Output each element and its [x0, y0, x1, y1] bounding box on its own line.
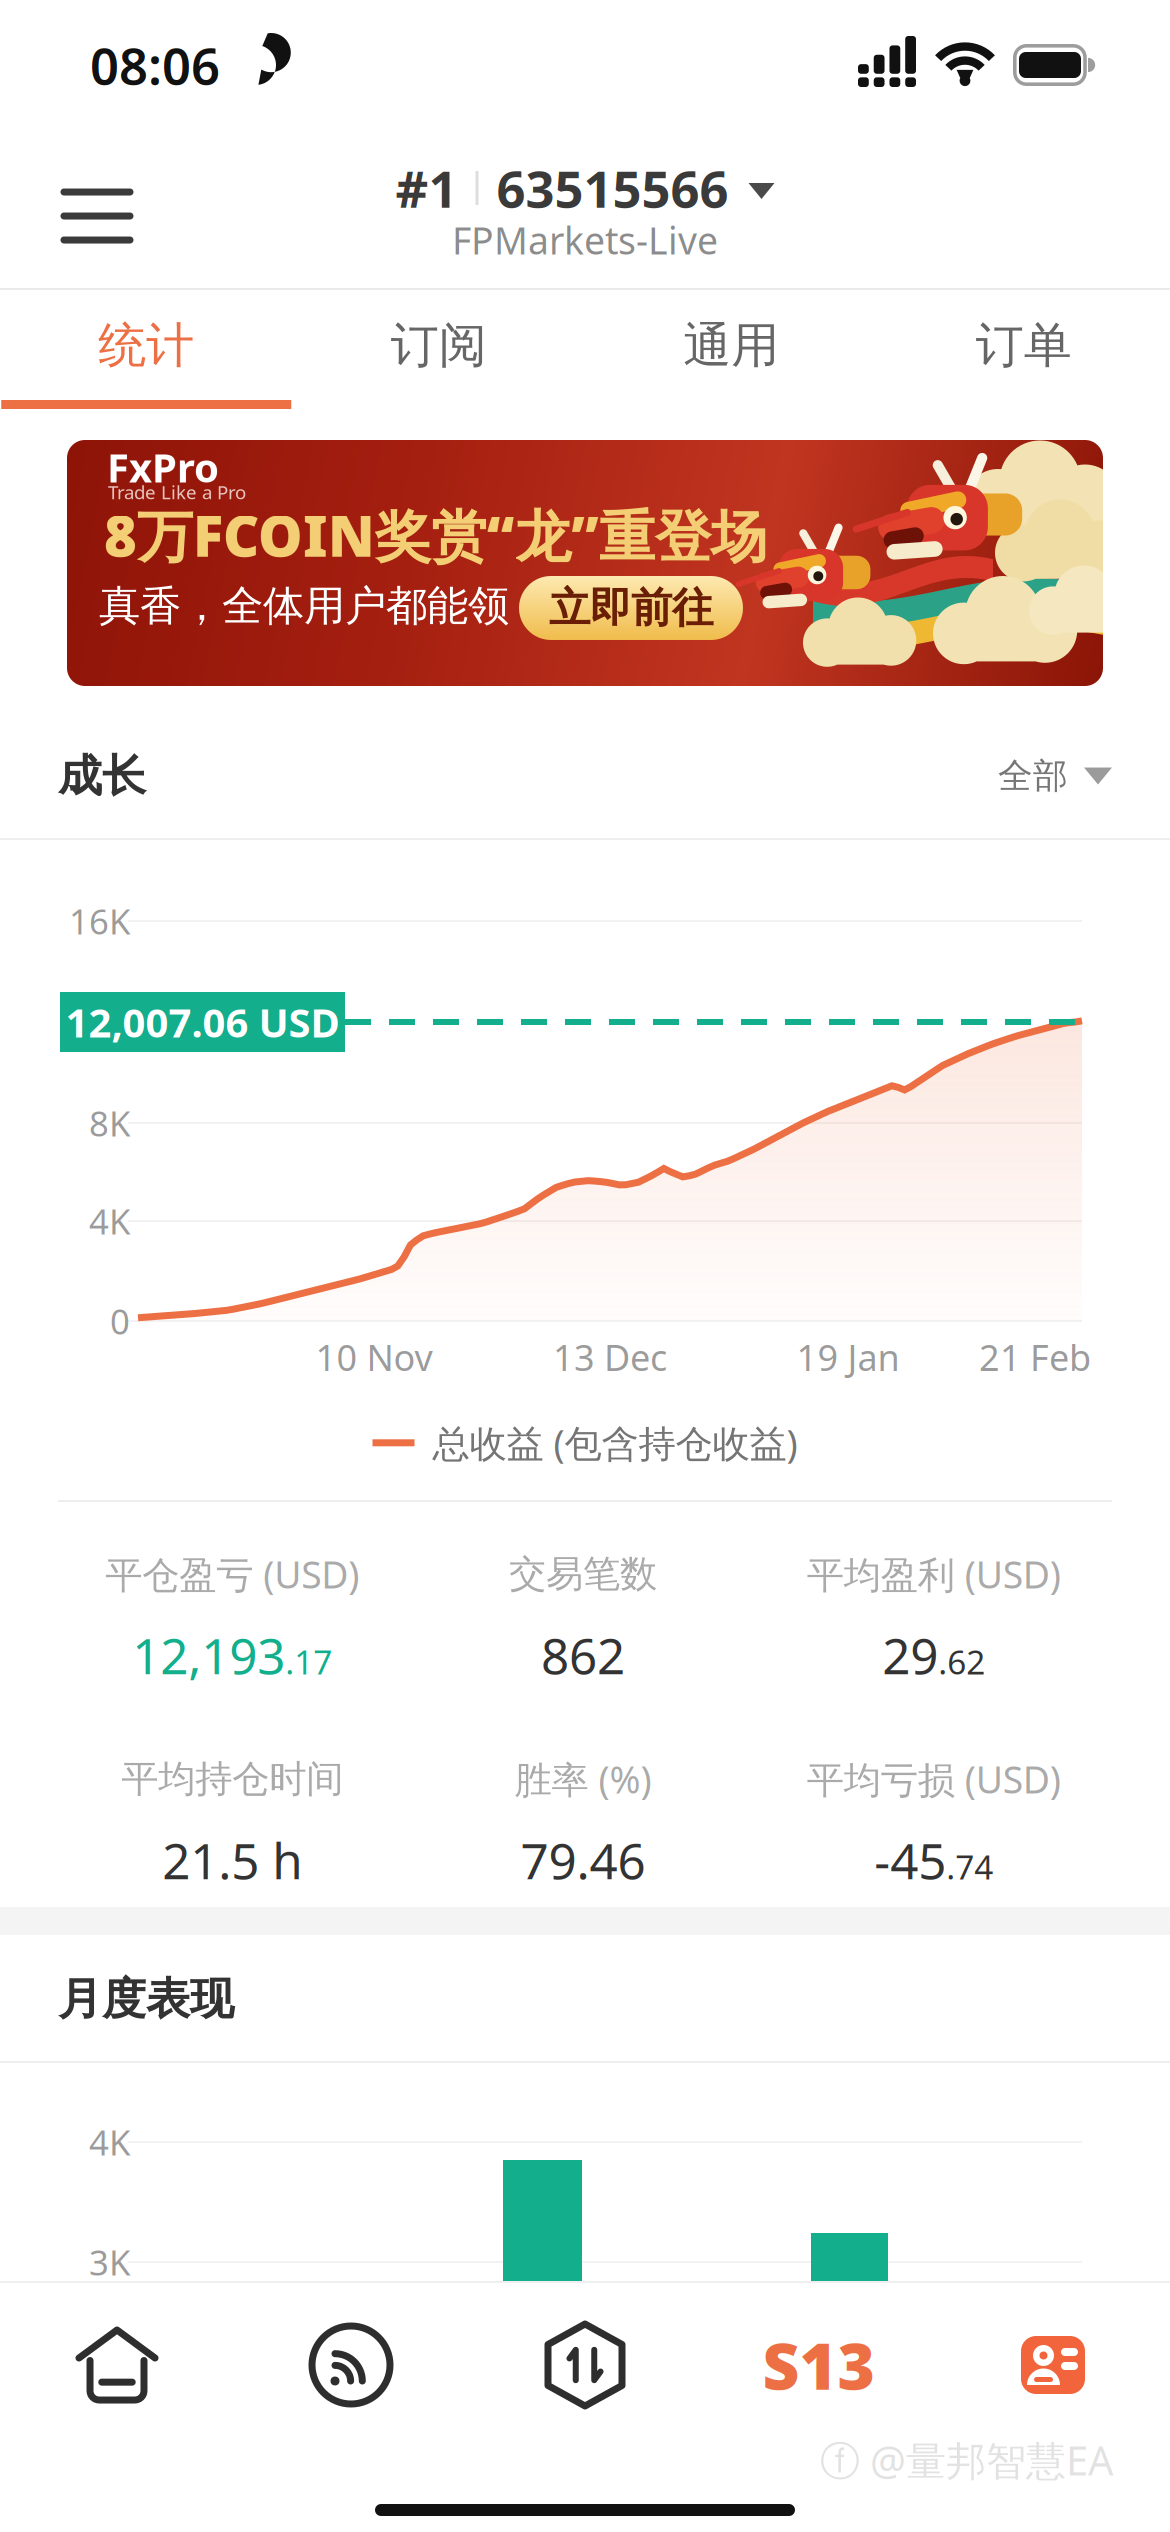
staticText: 862	[541, 1622, 625, 1688]
button[interactable]: Trade	[468, 2288, 702, 2442]
staticText: Trade Like a Pro	[108, 480, 246, 504]
staticText: 08:06	[90, 31, 220, 99]
staticText: 4K	[89, 1198, 130, 1244]
button[interactable]: 通用	[585, 291, 877, 409]
staticText: 29	[882, 1622, 938, 1688]
staticText: 4K	[89, 2119, 130, 2165]
button[interactable]: 全部	[998, 735, 1112, 817]
staticText: -45	[874, 1827, 946, 1893]
staticText: 订阅	[391, 316, 487, 375]
staticText: 16K	[69, 898, 130, 944]
staticText: 平均持仓时间	[121, 1756, 343, 1802]
staticText: 21 Feb	[979, 1333, 1091, 1381]
staticText: 10 Nov	[315, 1333, 432, 1381]
staticText: 12,007.06 USD	[65, 995, 339, 1048]
button[interactable]: Profile	[936, 2288, 1170, 2442]
staticText: 21.5 h	[162, 1827, 302, 1893]
staticText: 0	[110, 1298, 130, 1344]
staticText: 立即前往	[549, 583, 713, 633]
staticText: 订单	[976, 316, 1072, 375]
staticText: 月度表现	[58, 1972, 234, 2026]
staticText: #1	[395, 154, 457, 222]
staticText: 成长	[58, 749, 146, 803]
button[interactable]: Home	[0, 2288, 234, 2442]
staticText: 平仓盈亏 (USD)	[105, 1549, 359, 1599]
staticText: .17	[285, 1639, 332, 1684]
staticText: 13 Dec	[553, 1333, 667, 1381]
staticText: 8K	[89, 1100, 130, 1146]
staticText: 统计	[98, 316, 194, 375]
button[interactable]: FxPro	[67, 440, 1103, 686]
staticText: 通用	[683, 316, 779, 375]
staticText: 63515566	[496, 154, 728, 222]
staticText: S13	[762, 2322, 875, 2407]
button[interactable]: 订阅	[292, 291, 585, 409]
staticText: 平均亏损 (USD)	[807, 1754, 1061, 1804]
staticText: 胜率 (%)	[514, 1754, 651, 1804]
staticText: 19 Jan	[796, 1333, 899, 1381]
staticText: 交易笔数	[509, 1551, 657, 1597]
staticText: 总收益 (包含持仓收益)	[432, 1418, 797, 1468]
staticText: ⓕ @量邦智慧EA	[820, 2433, 1114, 2486]
button[interactable]: #1	[0, 156, 1170, 264]
staticText: FPMarkets-Live	[452, 215, 718, 265]
staticText: FxPro	[107, 440, 219, 493]
button[interactable]: 统计	[0, 291, 292, 409]
staticText: 8万FCOIN奖赏“龙”重登场	[104, 498, 767, 572]
button[interactable]: S13	[702, 2288, 936, 2442]
button[interactable]: Signals	[234, 2288, 468, 2442]
staticText: 79.46	[520, 1827, 645, 1893]
staticText: 全部	[998, 755, 1068, 797]
button[interactable]: Menu	[46, 174, 148, 258]
button[interactable]: 订单	[877, 291, 1170, 409]
staticText: 3K	[89, 2239, 130, 2285]
staticText: .74	[946, 1844, 993, 1889]
staticText: .62	[938, 1639, 985, 1684]
staticText: 12,193	[132, 1622, 285, 1688]
staticText: 真香，全体用户都能领	[99, 581, 509, 631]
staticText: 平均盈利 (USD)	[807, 1549, 1061, 1599]
